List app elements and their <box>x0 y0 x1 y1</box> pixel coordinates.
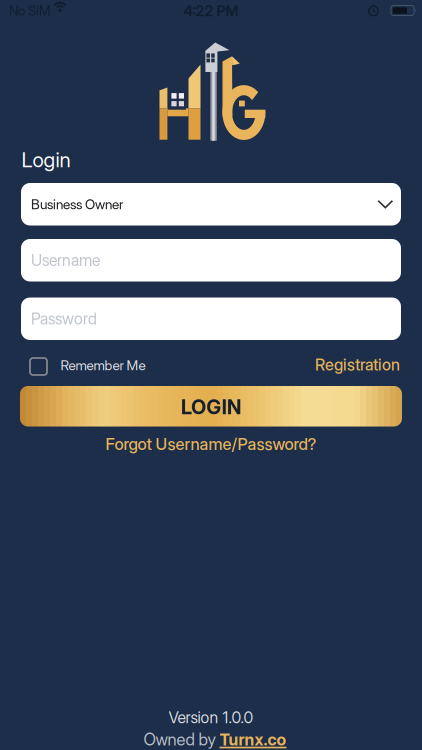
button[interactable]: Remember Me <box>30 357 145 375</box>
button[interactable]: Forgot Username/Password? <box>105 434 316 454</box>
button[interactable]: Business Owner <box>21 183 401 225</box>
staticText: Forgot Username/Password? <box>105 434 316 454</box>
staticText: Owned by <box>143 729 215 750</box>
button[interactable]: Registration <box>315 355 400 374</box>
staticText: Password <box>31 309 97 328</box>
staticText: Turnx.co <box>219 730 286 750</box>
staticText: 4:22 PM <box>183 2 238 20</box>
staticText: No SIM <box>9 2 50 19</box>
staticText: Business Owner <box>31 196 123 212</box>
staticText: Registration <box>315 355 400 374</box>
staticText: Username <box>31 251 100 270</box>
button[interactable]: LOGIN <box>20 386 402 426</box>
staticText: Remember Me <box>60 357 145 373</box>
staticText: LOGIN <box>181 395 241 419</box>
staticText: Version 1.0.0 <box>168 708 253 727</box>
button[interactable]: Turnx.co <box>219 730 286 750</box>
staticText: Login <box>21 147 70 172</box>
